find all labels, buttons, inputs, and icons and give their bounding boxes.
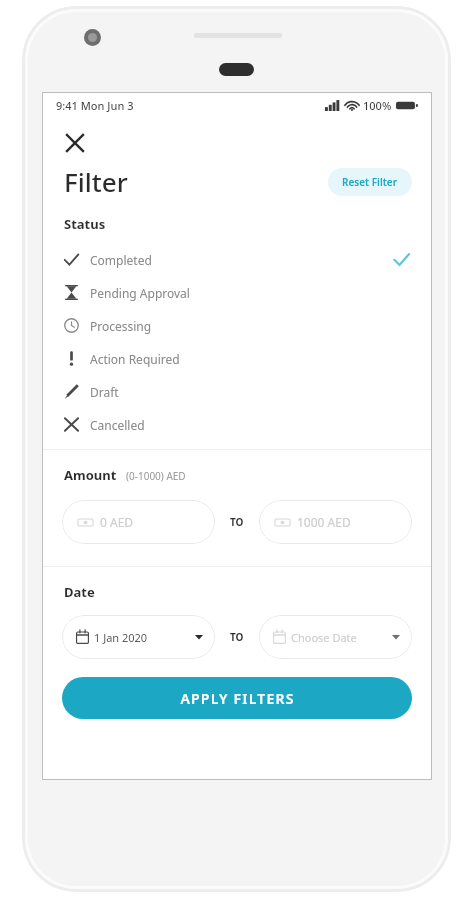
button[interactable]: Draft <box>42 375 432 408</box>
button[interactable]: Completed <box>42 243 432 276</box>
staticText: (0-1000) AED <box>126 469 186 483</box>
button[interactable]: Reset Filter <box>328 168 412 196</box>
button[interactable]: APPLY FILTERS <box>62 677 412 719</box>
staticText: Choose Date <box>291 630 357 645</box>
staticText: 1000 AED <box>297 514 351 530</box>
button[interactable]: Cancelled <box>42 408 432 441</box>
button[interactable]: Pending Approval <box>42 276 432 309</box>
staticText: 100% <box>363 98 392 113</box>
staticText: Filter <box>64 164 128 199</box>
staticText: TO <box>230 515 244 529</box>
staticText: Date <box>64 583 95 601</box>
staticText: Status <box>64 215 106 233</box>
staticText: 1 Jan 2020 <box>94 630 148 645</box>
button[interactable]: 1000 AED <box>259 500 412 544</box>
staticText: Reset Filter <box>342 175 398 189</box>
staticText: Action Required <box>90 351 180 367</box>
staticText: 0 AED <box>100 514 134 530</box>
staticText: 9:41 Mon Jun 3 <box>56 98 134 113</box>
staticText: TO <box>230 630 244 644</box>
button[interactable]: Action Required <box>42 342 432 375</box>
button[interactable]: 0 AED <box>62 500 215 544</box>
button[interactable]: Choose Date <box>259 615 412 659</box>
staticText: Completed <box>90 252 152 268</box>
staticText: Amount <box>64 466 117 484</box>
staticText: APPLY FILTERS <box>180 689 295 708</box>
button[interactable]: Close <box>56 124 94 162</box>
staticText: Processing <box>90 318 152 334</box>
staticText: Pending Approval <box>90 285 190 301</box>
staticText: Draft <box>90 384 119 400</box>
button[interactable]: Processing <box>42 309 432 342</box>
staticText: Cancelled <box>90 417 145 433</box>
button[interactable]: 1 Jan 2020 <box>62 615 215 659</box>
